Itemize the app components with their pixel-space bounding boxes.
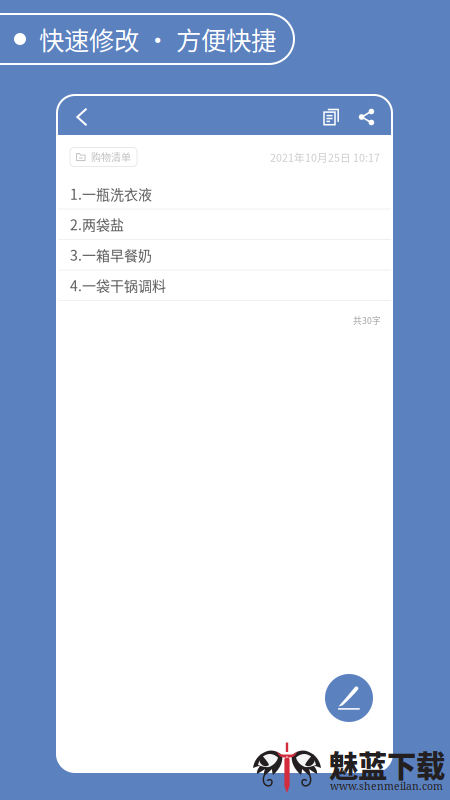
staticText: 共30字 bbox=[353, 314, 381, 326]
button[interactable]: Back bbox=[63, 95, 101, 135]
button[interactable]: Edit note bbox=[325, 674, 373, 722]
staticText: 4.一袋干锅调料 bbox=[70, 275, 166, 295]
staticText: 快速修改 · 方便快捷 bbox=[39, 21, 276, 57]
button[interactable]: 4.一袋干锅调料 bbox=[57, 270, 392, 301]
staticText: 2021年10月25日 10:17 bbox=[270, 149, 380, 165]
staticText: 1.一瓶洗衣液 bbox=[70, 184, 152, 204]
staticText: 2.两袋盐 bbox=[70, 214, 124, 234]
staticText: www.shenmeilan.com bbox=[330, 779, 443, 793]
button[interactable]: 2.两袋盐 bbox=[57, 209, 392, 240]
button[interactable]: 1.一瓶洗衣液 bbox=[57, 179, 392, 209]
staticText: 魅蓝下载 bbox=[329, 743, 445, 785]
button[interactable]: Share note bbox=[349, 95, 385, 135]
button[interactable]: 3.一箱早餐奶 bbox=[57, 240, 392, 270]
staticText: 购物清单 bbox=[91, 150, 131, 164]
staticText: 3.一箱早餐奶 bbox=[70, 245, 152, 265]
button[interactable]: Duplicate note bbox=[313, 95, 349, 135]
